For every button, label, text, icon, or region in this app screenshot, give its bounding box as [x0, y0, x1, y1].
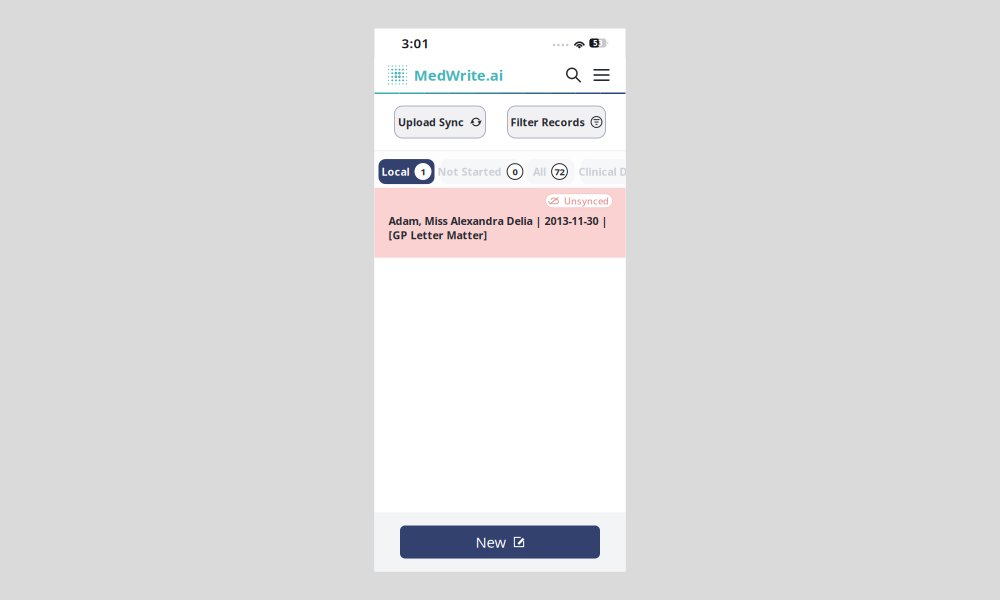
button[interactable]: New — [400, 525, 600, 558]
button[interactable]: Filter Records — [507, 106, 605, 138]
button[interactable]: Local — [378, 159, 434, 184]
button[interactable]: Menu — [590, 63, 612, 87]
staticText: 1 — [420, 165, 425, 178]
staticText: 3:01 — [401, 34, 429, 52]
staticText: New — [475, 532, 506, 552]
staticText: Local — [381, 164, 409, 179]
staticText: Clinical Drafts — [578, 164, 652, 179]
staticText: 53 — [593, 38, 603, 48]
staticText: Filter Records — [510, 115, 584, 129]
staticText: 0 — [512, 165, 517, 178]
button[interactable]: Upload Sync — [394, 106, 485, 138]
staticText: Upload Sync — [398, 115, 464, 129]
button[interactable]: All — [526, 159, 574, 184]
staticText: All — [533, 164, 546, 179]
staticText: MedWrite.ai — [414, 65, 503, 85]
staticText: 72 — [554, 165, 564, 178]
button[interactable]: Search — [562, 63, 584, 87]
staticText: Adam, Miss Alexandra Delia | 2013-11-30 … — [388, 214, 607, 242]
staticText: Unsynced — [564, 195, 609, 207]
button[interactable]: Not Started — [440, 159, 520, 184]
button[interactable]: Clinical Drafts — [580, 159, 672, 184]
staticText: Not Started — [437, 164, 501, 179]
